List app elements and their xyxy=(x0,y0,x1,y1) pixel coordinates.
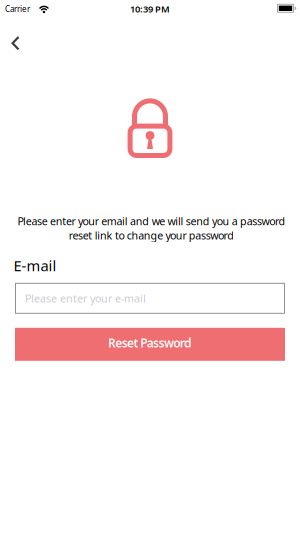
staticText: 10:39 PM xyxy=(130,3,170,15)
staticText: Please enter your email and we will send… xyxy=(17,214,285,228)
button[interactable]: Back xyxy=(0,20,40,64)
staticText: reset link to change your password xyxy=(69,228,234,242)
button[interactable]: E-mail field xyxy=(15,283,285,314)
staticText: Reset Password xyxy=(108,335,192,351)
staticText: E-mail xyxy=(13,256,56,275)
button[interactable]: Reset Password xyxy=(15,328,285,361)
staticText: Please enter your e-mail xyxy=(25,291,146,305)
staticText: Carrier xyxy=(5,3,30,14)
